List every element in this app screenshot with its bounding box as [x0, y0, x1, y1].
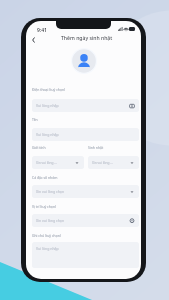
staticText: Xin vui lòng ... [36, 161, 57, 165]
staticText: Giới tính [32, 145, 46, 150]
staticText: Ghi chú (tuỳ chọn) [32, 233, 61, 238]
staticText: Vui lòng nhập [36, 132, 59, 137]
button[interactable]: Xin vui lòng chọn [32, 185, 139, 198]
staticText: Vui lòng nhập [36, 246, 59, 251]
staticText: Vui lòng nhập [36, 103, 59, 108]
staticText: Sinh nhật [88, 145, 104, 150]
button[interactable]: Xin vui lòng ... [88, 156, 139, 169]
staticText: Xin vui lòng chọn [36, 189, 65, 194]
staticText: Xin vui lòng ... [92, 161, 113, 165]
staticText: Thêm ngày sinh nhật [61, 35, 113, 42]
button[interactable]: Xin vui lòng ... [32, 156, 84, 169]
staticText: Cá đặc số nhóm [32, 175, 58, 180]
button[interactable]: Back [27, 34, 39, 46]
button[interactable]: Vui lòng nhập [32, 242, 139, 268]
staticText: Xin vui lòng chọn [36, 218, 65, 223]
staticText: Điện thoại (tuỳ chọn) [32, 87, 66, 92]
button[interactable]: Vui lòng nhập [32, 99, 139, 112]
staticText: Vị trí (tuỳ chọn) [32, 204, 57, 209]
button[interactable]: Xin vui lòng chọn [32, 214, 139, 227]
staticText: Tên [32, 117, 38, 122]
staticText: 9:41 [37, 27, 47, 34]
button[interactable]: Vui lòng nhập [32, 128, 139, 141]
